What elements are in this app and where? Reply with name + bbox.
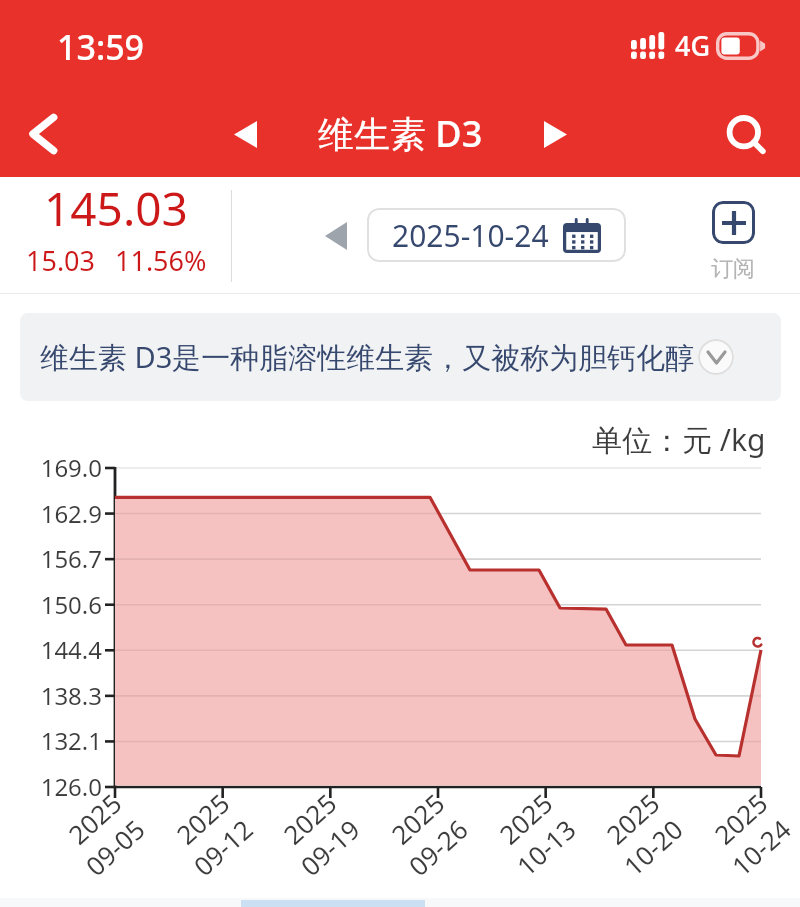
staticText: 132.1 bbox=[20, 724, 102, 757]
staticText: 订阅 bbox=[711, 255, 755, 283]
staticText: 维生素 D3 bbox=[318, 109, 483, 158]
button[interactable]: Back bbox=[12, 103, 74, 165]
button[interactable]: Expand description bbox=[698, 339, 734, 375]
staticText: 145.03 bbox=[44, 177, 188, 240]
button[interactable]: Next item bbox=[529, 108, 581, 160]
staticText: 2025 10-13 bbox=[461, 785, 583, 904]
button[interactable]: 2025-10-24 bbox=[367, 208, 626, 262]
staticText: 2025 10-20 bbox=[568, 785, 690, 904]
staticText: 4G bbox=[675, 27, 711, 64]
staticText: 15.03 bbox=[26, 242, 96, 279]
staticText: 11.56% bbox=[115, 242, 207, 279]
staticText: 162.9 bbox=[20, 497, 102, 530]
button[interactable]: Previous item bbox=[219, 108, 271, 160]
staticText: 13:59 bbox=[57, 24, 145, 70]
staticText: 2025 09-05 bbox=[30, 785, 152, 904]
button[interactable]: 订阅 bbox=[693, 201, 773, 283]
staticText: 维生素 D3是一种脂溶性维生素，又被称为胆钙化醇 bbox=[40, 337, 695, 377]
staticText: 156.7 bbox=[20, 542, 102, 575]
staticText: 169.0 bbox=[20, 451, 102, 484]
staticText: 150.6 bbox=[20, 588, 102, 621]
button[interactable]: Search bbox=[714, 102, 778, 166]
staticText: 138.3 bbox=[20, 679, 102, 712]
staticText: 2025 09-19 bbox=[245, 785, 367, 904]
staticText: 144.4 bbox=[20, 633, 102, 666]
staticText: 2025 10-24 bbox=[676, 785, 798, 904]
button[interactable]: Previous day bbox=[312, 212, 360, 260]
staticText: 2025 09-12 bbox=[138, 785, 260, 904]
button[interactable]: 维生素 D3是一种脂溶性维生素，又被称为胆钙化醇 bbox=[20, 313, 781, 401]
staticText: 2025 09-26 bbox=[353, 785, 475, 904]
staticText: 126.0 bbox=[20, 770, 102, 803]
staticText: 2025-10-24 bbox=[392, 215, 549, 256]
staticText: 单位：元 /kg bbox=[592, 419, 766, 460]
